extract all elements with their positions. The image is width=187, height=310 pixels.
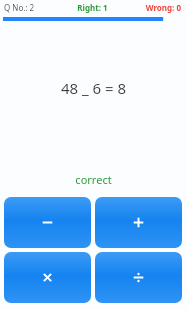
staticText: Right: 1 xyxy=(63,2,122,13)
button[interactable]: Divide xyxy=(95,252,182,303)
staticText: Q No.: 2 xyxy=(4,2,63,13)
button[interactable]: Minus xyxy=(4,197,91,248)
staticText: 48 _ 6 = 8 xyxy=(61,78,127,98)
button[interactable]: Plus xyxy=(95,197,182,248)
staticText: correct xyxy=(0,172,187,187)
button[interactable]: Multiply xyxy=(4,252,91,303)
staticText: Wrong: 0 xyxy=(122,2,181,13)
